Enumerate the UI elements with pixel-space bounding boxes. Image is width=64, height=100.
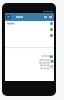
button[interactable]: Bookmark 2 <box>50 28 53 31</box>
button[interactable]: Navigate up <box>6 15 11 19</box>
button[interactable]: Share <box>40 64 53 70</box>
button[interactable]: Copy <box>39 59 54 64</box>
button[interactable]: Open <box>42 55 53 58</box>
button[interactable]: Bookmark 3 <box>50 34 53 37</box>
button[interactable]: Bookmark 1 <box>50 22 53 25</box>
